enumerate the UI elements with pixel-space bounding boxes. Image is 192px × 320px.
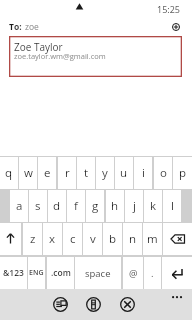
staticText: l [171, 198, 174, 214]
button[interactable]: Enter [162, 257, 192, 289]
staticText: zoe [25, 21, 39, 33]
button[interactable]: k [144, 190, 162, 222]
staticText: 15:25 [157, 3, 180, 15]
staticText: @ [129, 267, 138, 280]
staticText: e [44, 165, 51, 181]
staticText: &123 [3, 267, 24, 279]
button[interactable]: l [163, 190, 181, 222]
staticText: Zoe Taylor [14, 40, 63, 54]
button[interactable]: g [86, 190, 104, 222]
staticText: v [90, 231, 96, 247]
staticText: z [30, 231, 36, 247]
button[interactable]: Attach [86, 297, 101, 312]
button[interactable]: e [38, 157, 56, 189]
button[interactable]: i [134, 157, 152, 189]
staticText: g [92, 198, 99, 214]
staticText: r [65, 165, 70, 181]
staticText: h [111, 198, 119, 214]
button[interactable]: r [58, 157, 76, 189]
staticText: w [24, 165, 33, 181]
button[interactable]: Backspace [163, 223, 192, 255]
button[interactable]: v [83, 223, 102, 255]
staticText: x [49, 231, 56, 247]
staticText: j [133, 198, 136, 214]
button[interactable]: Add recipient [169, 20, 183, 34]
button[interactable]: . [144, 257, 161, 289]
button[interactable]: Send [53, 297, 68, 312]
button[interactable]: w [19, 157, 37, 189]
staticText: c [70, 231, 76, 247]
staticText: b [109, 231, 117, 247]
button[interactable]: space [75, 257, 121, 289]
staticText: n [129, 231, 137, 247]
button[interactable]: x [43, 223, 62, 255]
staticText: zoe.taylor.wm@gmail.com [14, 51, 106, 61]
button[interactable]: .com [47, 257, 74, 289]
staticText: a [16, 198, 23, 214]
button[interactable]: f [67, 190, 85, 222]
staticText: t [84, 165, 89, 181]
button[interactable]: &123 [0, 257, 27, 289]
staticText: k [150, 198, 157, 214]
staticText: . [151, 267, 154, 280]
button[interactable]: z [23, 223, 42, 255]
staticText: d [53, 198, 61, 214]
staticText: p [179, 165, 187, 181]
staticText: y [102, 165, 108, 181]
staticText: s [35, 198, 41, 214]
button[interactable]: u [115, 157, 133, 189]
button[interactable]: n [123, 223, 142, 255]
button[interactable]: Zoe Taylor [9, 36, 182, 77]
button[interactable]: Shift [0, 223, 21, 255]
staticText: m [147, 231, 158, 247]
button[interactable]: t [77, 157, 95, 189]
staticText: To: [9, 21, 22, 33]
button[interactable]: j [125, 190, 143, 222]
button[interactable]: y [96, 157, 114, 189]
button[interactable]: q [0, 157, 18, 189]
staticText: o [160, 165, 167, 181]
button[interactable]: More options [167, 289, 189, 307]
button[interactable]: d [48, 190, 66, 222]
button[interactable]: ENG [28, 257, 45, 289]
staticText: .com [51, 267, 71, 279]
button[interactable]: c [63, 223, 82, 255]
button[interactable]: o [154, 157, 172, 189]
staticText: i [142, 165, 145, 181]
button[interactable]: Close [120, 297, 135, 312]
button[interactable]: h [106, 190, 124, 222]
staticText: f [74, 198, 78, 214]
button[interactable]: m [143, 223, 162, 255]
button[interactable]: a [10, 190, 28, 222]
staticText: u [120, 165, 128, 181]
staticText: q [5, 165, 13, 181]
button[interactable]: s [29, 190, 47, 222]
button[interactable]: p [173, 157, 192, 189]
staticText: ENG [29, 268, 44, 278]
button[interactable]: @ [123, 257, 143, 289]
button[interactable]: b [103, 223, 122, 255]
staticText: space [85, 267, 111, 280]
